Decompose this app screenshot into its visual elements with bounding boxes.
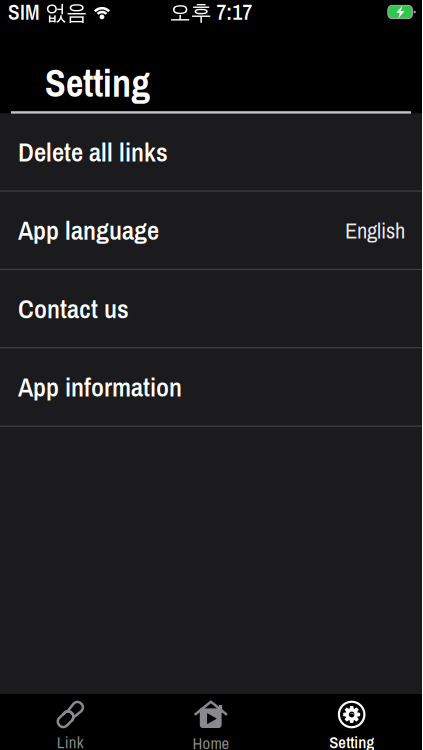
staticText: Link [57,731,84,750]
button[interactable]: Contact us [0,270,422,347]
staticText: Delete all links [18,134,168,170]
staticText: Setting [329,731,374,750]
staticText: Contact us [18,291,129,326]
staticText: Setting [45,57,150,109]
button[interactable]: Delete all links [0,113,422,190]
staticText: Home [192,732,229,750]
staticText: English [345,215,405,245]
staticText: SIM 없음 [8,0,87,26]
button[interactable]: Link [0,694,141,750]
staticText: App language [18,212,159,248]
button[interactable]: App information [0,348,422,426]
button[interactable]: Setting [281,694,422,750]
button[interactable]: App language [0,192,422,269]
staticText: 오후 7:17 [169,0,252,26]
staticText: App information [18,369,182,405]
button[interactable]: Home [141,694,281,750]
